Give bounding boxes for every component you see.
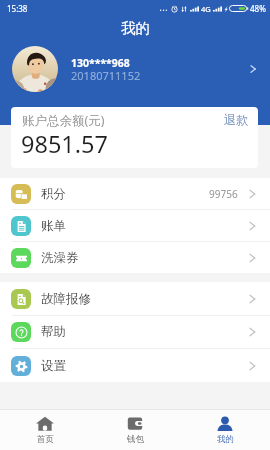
button[interactable]: 钱包 [90,410,180,445]
button[interactable]: 设置 [0,349,270,382]
staticText: 账户总余额(元) [22,112,105,129]
staticText: 设置 [41,358,66,374]
staticText: 我的 [217,434,234,445]
staticText: 首页 [37,434,54,445]
button[interactable]: 账户总余额(元) [11,107,258,168]
staticText: 帮助 [41,324,66,340]
staticText: 账单 [41,218,66,234]
other: Open profile [246,62,260,76]
button[interactable]: 我的 [180,410,270,445]
button[interactable]: 洗澡券 [0,242,270,273]
staticText: 20180711152 [71,68,141,83]
button[interactable]: 首页 [0,410,90,445]
staticText: 钱包 [127,434,144,445]
staticText: 故障报修 [41,291,91,307]
button[interactable]: 130****968 [0,41,270,97]
staticText: 4G [201,4,211,14]
button[interactable]: 帮助 [0,316,270,348]
staticText: 洗澡券 [41,250,79,266]
staticText: 9851.57 [21,128,108,160]
staticText: 我的 [121,19,150,37]
button[interactable]: 故障报修 [0,282,270,315]
staticText: 积分 [41,186,66,202]
staticText: 15:38 [7,3,28,14]
staticText: 130****968 [71,56,130,70]
button[interactable]: 账单 [0,210,270,241]
staticText: 99756 [209,187,238,201]
staticText: 48% [250,3,266,14]
button[interactable]: 积分 [0,178,270,209]
staticText: 退款 [224,112,248,127]
